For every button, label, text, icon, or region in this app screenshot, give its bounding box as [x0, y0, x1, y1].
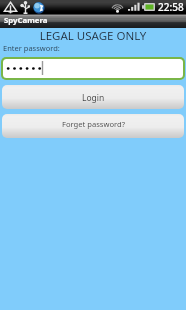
- staticText: 22:58: [158, 0, 184, 14]
- button[interactable]: [1, 57, 185, 80]
- staticText: Login: [82, 92, 105, 104]
- staticText: SpyCamera: [4, 15, 48, 26]
- staticText: LEGAL USAGE ONLY: [0, 28, 186, 43]
- button[interactable]: Login: [2, 85, 184, 109]
- button[interactable]: Forget password?: [2, 114, 184, 138]
- staticText: Forget password?: [62, 119, 125, 129]
- staticText: Enter password:: [3, 43, 60, 53]
